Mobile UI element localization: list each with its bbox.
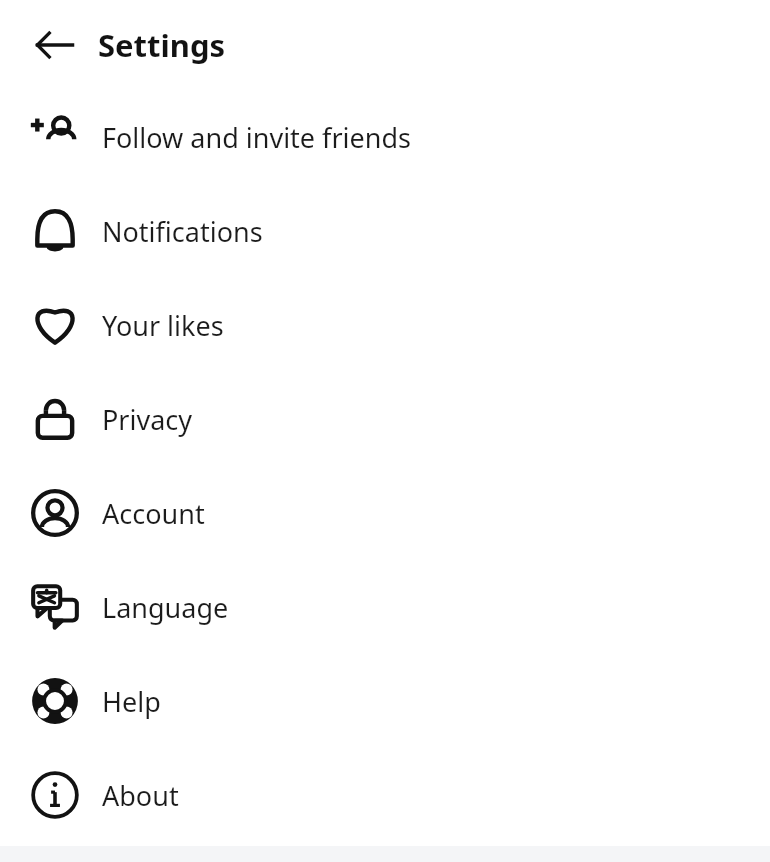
button[interactable]: Language bbox=[0, 560, 770, 654]
staticText: Notifications bbox=[102, 213, 263, 250]
button[interactable]: Your likes bbox=[0, 278, 770, 372]
button[interactable]: Follow and invite friends bbox=[0, 90, 770, 184]
button[interactable]: Back bbox=[22, 12, 88, 78]
staticText: Follow and invite friends bbox=[102, 119, 411, 156]
staticText: Language bbox=[102, 589, 229, 626]
staticText: Privacy bbox=[102, 401, 193, 438]
button[interactable]: Help bbox=[0, 654, 770, 748]
staticText: About bbox=[102, 777, 179, 814]
staticText: Account bbox=[102, 495, 205, 532]
button[interactable]: Notifications bbox=[0, 184, 770, 278]
button[interactable]: About bbox=[0, 748, 770, 842]
staticText: Your likes bbox=[102, 307, 224, 344]
staticText: Help bbox=[102, 683, 161, 720]
button[interactable]: Privacy bbox=[0, 372, 770, 466]
staticText: Settings bbox=[98, 24, 226, 66]
button[interactable]: Account bbox=[0, 466, 770, 560]
